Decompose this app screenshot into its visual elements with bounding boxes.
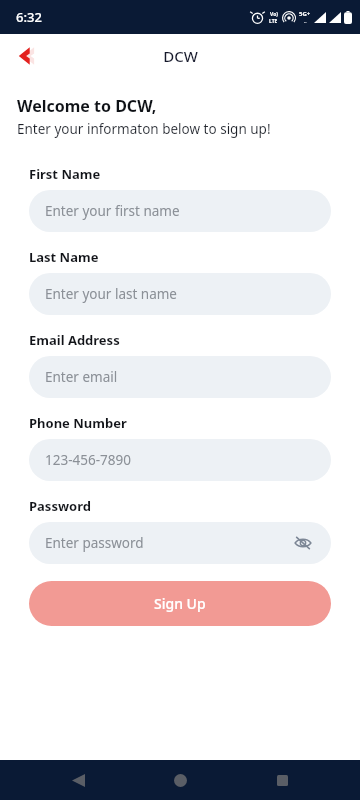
staticText: 5G+ <box>299 10 311 18</box>
staticText: Enter email <box>45 368 118 386</box>
button[interactable]: Back <box>6 38 42 74</box>
staticText: Password <box>29 497 91 515</box>
button[interactable]: 123-456-7890 <box>29 439 331 481</box>
staticText: First Name <box>29 165 101 183</box>
staticText: Phone Number <box>29 414 127 432</box>
staticText: Last Name <box>29 248 99 266</box>
button[interactable]: Sign Up <box>29 581 331 626</box>
staticText: Sign Up <box>154 594 206 613</box>
staticText: Email Address <box>29 331 120 349</box>
staticText: Welcome to DCW, <box>17 95 157 117</box>
staticText: Enter your informaton below to sign up! <box>17 120 271 138</box>
staticText: 123-456-7890 <box>45 451 131 469</box>
staticText: Enter your first name <box>45 202 180 220</box>
staticText: DCW <box>163 46 198 66</box>
button[interactable]: Back <box>54 760 102 800</box>
button[interactable]: Enter email <box>29 356 331 398</box>
button[interactable]: Enter your first name <box>29 190 331 232</box>
button[interactable]: Enter password <box>29 522 331 564</box>
button[interactable]: Home <box>156 760 204 800</box>
staticText: LTE <box>269 18 278 25</box>
staticText: Enter your last name <box>45 285 177 303</box>
staticText: .. <box>304 18 307 25</box>
button[interactable]: Show password <box>291 531 315 555</box>
staticText: Enter password <box>45 534 144 552</box>
button[interactable]: Enter your last name <box>29 273 331 315</box>
staticText: 6:32 <box>16 8 42 26</box>
button[interactable]: Recent apps <box>258 760 306 800</box>
staticText: Vo) <box>270 11 278 18</box>
